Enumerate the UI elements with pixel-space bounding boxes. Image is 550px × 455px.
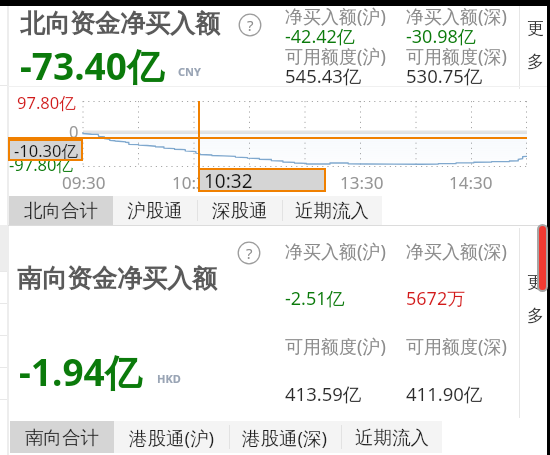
staticText: 10:32 [204,168,253,192]
staticText: 13:30 [340,171,384,194]
staticText: -2.51亿 [285,286,345,311]
button[interactable]: Help [238,13,262,37]
staticText: 14:30 [449,171,493,194]
staticText: 09:30 [62,171,106,194]
staticText: 多 [527,305,544,326]
staticText: 港股通(深) [242,425,328,450]
button[interactable]: 港股通(深) [229,421,341,453]
staticText: 411.90亿 [406,381,483,406]
button[interactable]: 深股通 [197,196,282,225]
staticText: 港股通(沪) [129,425,215,450]
staticText: -1.94亿 [19,346,142,397]
button[interactable]: 港股通(沪) [114,421,229,453]
button[interactable]: Help [237,241,261,265]
staticText: 更 [527,18,544,39]
button[interactable]: 北向合计 [9,196,113,225]
staticText: 南向合计 [25,426,99,449]
staticText: 深股通 [212,199,268,222]
staticText: 多 [527,51,544,72]
staticText: 可用额度(深) [406,334,507,359]
staticText: 5672万 [406,286,466,311]
staticText: -97.80亿 [9,153,73,176]
button[interactable]: More [524,272,546,326]
staticText: 530.75亿 [406,63,483,88]
staticText: 10:30 [172,171,216,194]
staticText: 0 [69,120,79,142]
staticText: 净买入额(深) [406,239,507,264]
staticText: 近期流入 [295,199,369,222]
staticText: 净买入额(深) [406,4,507,29]
staticText: 净买入额(沪) [285,239,386,264]
staticText: 413.59亿 [285,381,362,406]
staticText: 可用额度(深) [406,44,507,69]
staticText: 北向资金净买入额 [20,8,220,39]
staticText: ? [246,243,253,263]
staticText: 南向资金净买入额 [17,263,217,294]
staticText: 沪股通 [127,199,183,222]
staticText: 净买入额(沪) [285,4,386,29]
button[interactable]: More [524,18,546,72]
staticText: 北向合计 [24,199,98,222]
staticText: -10.30亿 [14,139,78,161]
button[interactable]: 近期流入 [282,196,382,225]
staticText: -73.40亿 [20,40,164,91]
staticText: 545.43亿 [285,63,362,88]
button[interactable]: 沪股通 [113,196,197,225]
staticText: 97.80亿 [17,91,76,114]
button[interactable]: 近期流入 [341,421,442,453]
staticText: HKD [157,371,181,386]
staticText: 可用额度(沪) [285,44,386,69]
staticText: -42.42亿 [285,24,355,49]
staticText: 更 [527,272,544,293]
staticText: CNY [178,64,201,79]
staticText: ? [247,15,254,35]
staticText: -30.98亿 [406,24,476,49]
button[interactable]: 南向合计 [10,421,114,453]
staticText: 近期流入 [355,426,429,449]
staticText: 可用额度(沪) [285,334,386,359]
